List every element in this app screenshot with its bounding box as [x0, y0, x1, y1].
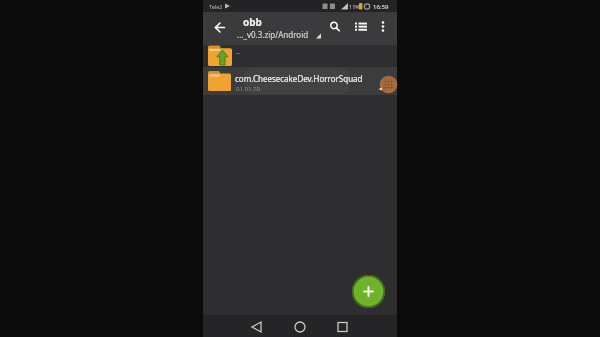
staticText: 01.01.70: [236, 85, 260, 93]
button[interactable]: [203, 315, 267, 337]
button[interactable]: [267, 315, 332, 337]
button[interactable]: [352, 275, 385, 308]
staticText: 16:59: [373, 3, 389, 11]
staticText: Tele2: [209, 3, 223, 10]
staticText: obb: [243, 15, 262, 29]
staticText: 11%: [349, 3, 360, 10]
button[interactable]: [351, 17, 369, 35]
staticText: ..._v0.3.zip/Android: [237, 29, 309, 40]
button[interactable]: [375, 17, 391, 35]
staticText: ..: [236, 47, 240, 57]
button[interactable]: com.CheesecakeDev.HorrorSquad: [203, 67, 397, 95]
staticText: com.CheesecakeDev.HorrorSquad: [235, 73, 363, 84]
button[interactable]: [236, 12, 326, 45]
button[interactable]: [210, 18, 230, 38]
button[interactable]: [325, 17, 343, 35]
button[interactable]: ..: [203, 45, 397, 67]
button[interactable]: [332, 315, 397, 337]
